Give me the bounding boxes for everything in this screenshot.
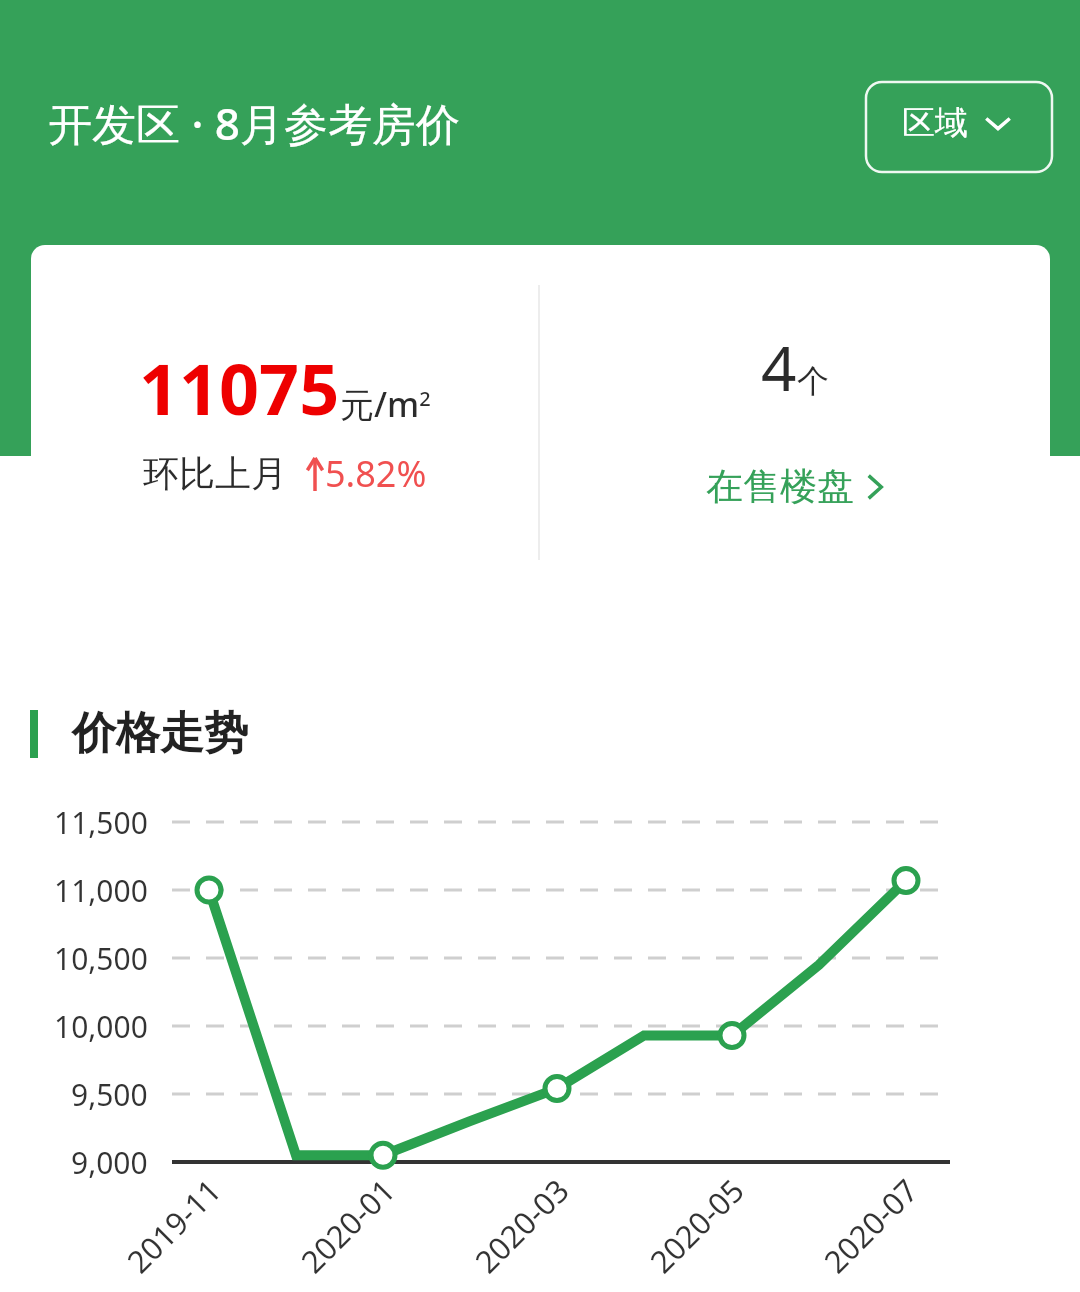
staticText: 价格走势 [72, 706, 248, 761]
staticText: 4 [761, 325, 797, 409]
button[interactable]: 在售楼盘 [696, 457, 894, 516]
staticText: 开发区 · 8月参考房价 [48, 93, 461, 153]
staticText: 环比上月 [143, 451, 287, 496]
staticText: 5.82% [325, 449, 427, 498]
button[interactable]: 区域 [864, 78, 1050, 168]
staticText: 元/m2 [340, 381, 431, 427]
staticText: 在售楼盘 [706, 463, 854, 510]
staticText: 11075 [139, 340, 340, 435]
staticText: 个 [797, 361, 829, 401]
staticText: 区域 [902, 102, 968, 144]
